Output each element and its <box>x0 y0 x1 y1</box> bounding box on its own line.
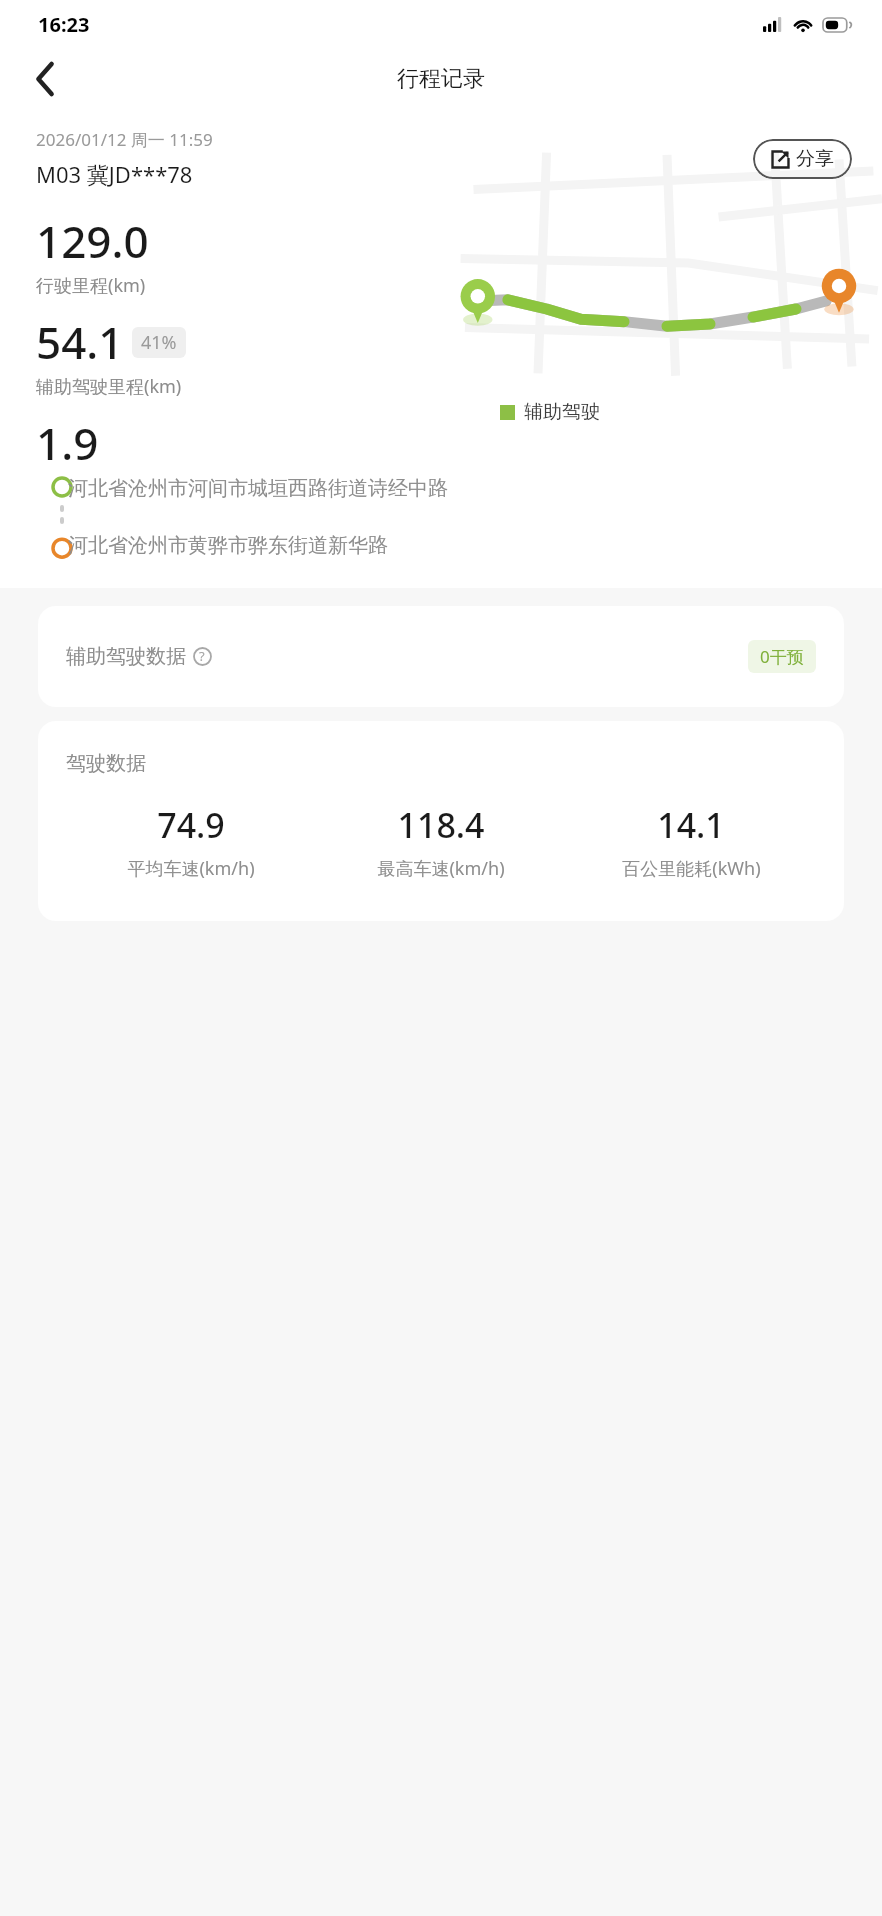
button[interactable]: 河北省沧州市黄骅市骅东街道新华路 <box>68 529 852 562</box>
staticText: M03 冀JD***78 <box>36 159 193 189</box>
staticText: 54.1 <box>36 312 124 372</box>
staticText: 1.9 <box>36 413 99 462</box>
staticText: 行驶里程(km) <box>36 273 146 298</box>
staticText: 辅助驾驶 <box>524 400 600 424</box>
staticText: 驾驶数据 <box>66 751 146 776</box>
button[interactable]: 分享 <box>753 139 852 179</box>
staticText: 74.9 <box>157 802 225 848</box>
staticText: 最高车速(km/h) <box>377 856 505 881</box>
staticText: 16:23 <box>38 11 90 38</box>
staticText: 0干预 <box>760 645 804 668</box>
staticText: 辅助驾驶里程(km) <box>36 374 182 399</box>
staticText: 行程记录 <box>397 65 485 93</box>
staticText: 百公里能耗(kWh) <box>622 856 761 881</box>
button[interactable]: 驾驶数据 <box>38 721 844 921</box>
staticText: 129.0 <box>36 211 149 271</box>
button[interactable]: Back <box>22 55 70 103</box>
button[interactable]: 河北省沧州市河间市城垣西路街道诗经中路 <box>68 472 852 505</box>
staticText: 河北省沧州市黄骅市骅东街道新华路 <box>68 533 388 558</box>
staticText: 2026/01/12 周一 11:59 <box>36 128 213 151</box>
staticText: 分享 <box>796 147 834 171</box>
staticText: 41% <box>141 330 177 355</box>
staticText: 118.4 <box>397 802 485 848</box>
button[interactable]: 辅助驾驶数据 <box>38 606 844 707</box>
staticText: 辅助驾驶数据 <box>66 644 186 669</box>
staticText: 14.1 <box>657 802 725 848</box>
staticText: 河北省沧州市河间市城垣西路街道诗经中路 <box>68 476 448 501</box>
staticText: 平均车速(km/h) <box>127 856 255 881</box>
staticText: ? <box>199 647 205 665</box>
